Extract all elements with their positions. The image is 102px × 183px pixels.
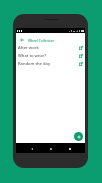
button[interactable]: Back bbox=[28, 145, 35, 152]
button[interactable]: Back bbox=[19, 37, 25, 43]
staticText: After work bbox=[18, 45, 79, 51]
button[interactable]: After work bbox=[16, 44, 85, 52]
staticText: What to wear? bbox=[18, 53, 79, 59]
button[interactable]: What to wear? bbox=[16, 52, 85, 60]
staticText: Wheel Collection bbox=[28, 38, 55, 42]
staticText: Random the day bbox=[18, 61, 79, 67]
button[interactable]: Random the day bbox=[16, 60, 85, 68]
button[interactable]: Add bbox=[74, 132, 83, 141]
button[interactable]: Recents bbox=[66, 145, 73, 152]
button[interactable]: Home bbox=[47, 145, 54, 152]
